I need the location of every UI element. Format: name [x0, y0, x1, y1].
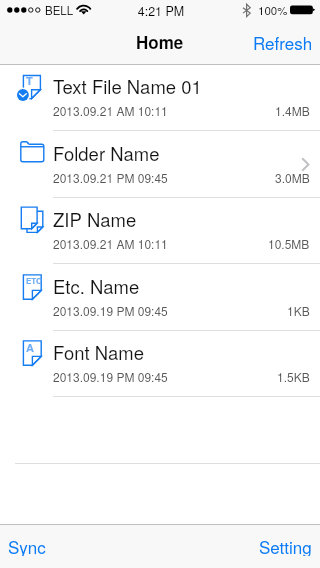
button[interactable]: Refresh	[244, 19, 320, 64]
staticText: A	[26, 340, 34, 356]
staticText: 3.0MB	[275, 169, 310, 186]
staticText: ZIP Name	[53, 206, 137, 232]
staticText: Font Name	[53, 339, 145, 365]
button[interactable]: Sync	[0, 523, 54, 567]
button[interactable]: A	[0, 330, 320, 397]
staticText: 10.5MB	[268, 235, 310, 252]
staticText: 1.5KB	[277, 368, 310, 385]
staticText: ETC	[26, 275, 42, 286]
button[interactable]: Folder Name	[0, 131, 320, 198]
staticText: 2013.09.19 PM 09:45	[53, 302, 168, 319]
button[interactable]: Setting	[251, 523, 320, 567]
staticText: 2013.09.21 PM 09:45	[53, 169, 168, 186]
staticText: 2013.09.19 PM 09:45	[53, 368, 168, 385]
staticText: Refresh	[253, 30, 313, 53]
staticText: 100%	[258, 2, 288, 18]
staticText: Setting	[259, 534, 312, 556]
staticText: 2013.09.21 AM 10:11	[53, 102, 168, 119]
staticText: Home	[136, 30, 184, 54]
staticText: 2013.09.21 AM 10:11	[53, 235, 168, 252]
staticText: T	[26, 73, 33, 89]
button[interactable]: ZIP Name	[0, 197, 320, 264]
staticText: 4:21 PM	[1, 2, 320, 20]
button[interactable]: ETC	[0, 264, 320, 331]
staticText: BELL	[45, 2, 74, 18]
staticText: Sync	[8, 534, 46, 556]
button[interactable]: T	[0, 64, 320, 131]
staticText: 1.4MB	[275, 102, 310, 119]
staticText: Text File Name 01	[53, 73, 202, 99]
staticText: Etc. Name	[53, 273, 140, 299]
staticText: 1KB	[287, 302, 310, 319]
staticText: Folder Name	[53, 140, 160, 166]
